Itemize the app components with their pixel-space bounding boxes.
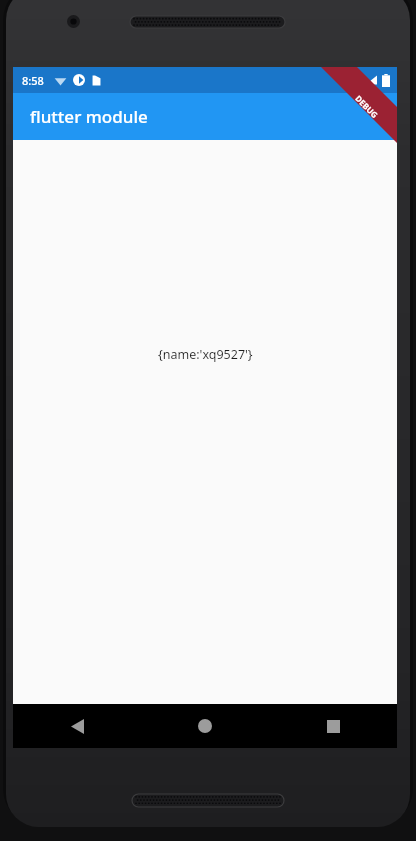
button[interactable]: Back [13,704,141,748]
button[interactable]: Home [141,704,269,748]
staticText: {name:'xq9527'} [158,346,253,363]
staticText: 8:58 [22,73,44,88]
button[interactable]: flutter module [13,93,397,140]
button[interactable]: Recent apps [269,704,397,748]
staticText: flutter module [30,105,148,128]
staticText: DEBUG [353,93,381,120]
